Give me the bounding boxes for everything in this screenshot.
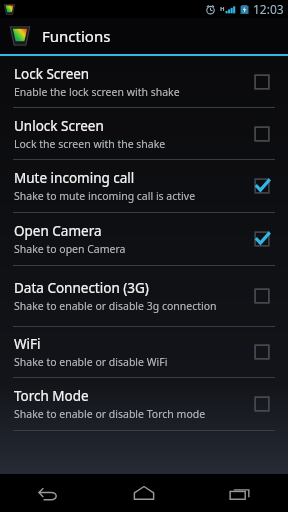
button[interactable]: Lock Screen toggle	[248, 68, 276, 96]
staticText: Shake to mute incoming call is active	[14, 189, 196, 203]
staticText: Data Connection (3G)	[14, 279, 149, 297]
staticText: Unlock Screen	[14, 117, 104, 135]
staticText: WiFi	[14, 335, 41, 353]
staticText: Functions	[42, 26, 111, 46]
button[interactable]: Open Camera toggle	[248, 225, 276, 253]
staticText: Open Camera	[14, 222, 102, 240]
staticText: 12:03	[253, 1, 284, 17]
button[interactable]: Home	[96, 474, 192, 512]
staticText: Shake to enable or disable WiFi	[14, 355, 168, 369]
button[interactable]: Mute incoming call toggle	[248, 172, 276, 200]
button[interactable]: Torch Mode toggle	[248, 390, 276, 418]
staticText: Shake to open Camera	[14, 242, 126, 256]
button[interactable]: WiFi	[0, 327, 288, 377]
staticText: Lock Screen	[14, 65, 90, 83]
button[interactable]: Torch Mode	[0, 378, 288, 430]
button[interactable]: Unlock Screen toggle	[248, 120, 276, 148]
button[interactable]: Lock Screen	[0, 56, 288, 107]
staticText: Lock the screen with the shake	[14, 137, 166, 151]
button[interactable]: Back	[0, 474, 96, 512]
button[interactable]: Unlock Screen	[0, 108, 288, 159]
staticText: Enable the lock screen with shake	[14, 85, 180, 99]
button[interactable]: Data Connection (3G)	[0, 266, 288, 326]
button[interactable]: Recents	[192, 474, 288, 512]
staticText: Shake to enable or disable Torch mode	[14, 407, 206, 421]
staticText: Torch Mode	[14, 387, 89, 405]
button[interactable]: WiFi toggle	[248, 338, 276, 366]
button[interactable]: Open Camera	[0, 213, 288, 265]
button[interactable]: Mute incoming call	[0, 160, 288, 212]
button[interactable]: Data Connection (3G) toggle	[248, 282, 276, 310]
staticText: Mute incoming call	[14, 169, 135, 187]
staticText: H	[220, 5, 225, 13]
staticText: Shake to enable or disable 3g connection	[14, 299, 217, 313]
